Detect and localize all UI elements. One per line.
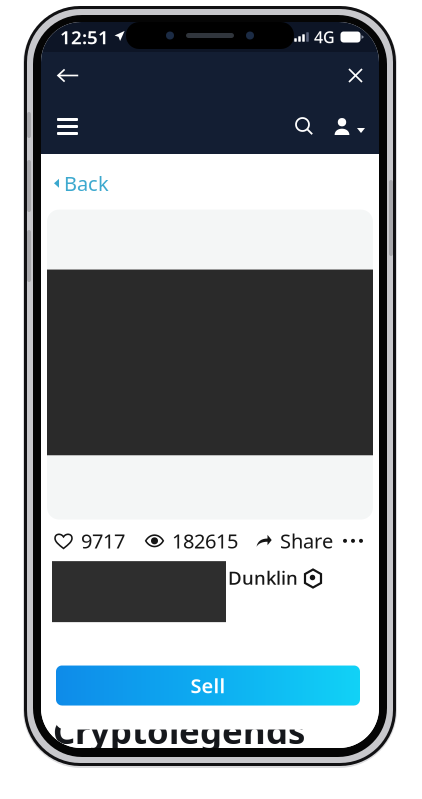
staticText: 4G <box>314 26 335 48</box>
button[interactable]: Close <box>336 52 379 99</box>
button[interactable]: 182615 <box>125 525 238 557</box>
staticText: Sell <box>190 672 225 699</box>
staticText: 182615 <box>172 528 238 554</box>
button[interactable]: Back <box>41 154 109 210</box>
staticText: 9717 <box>81 528 125 554</box>
staticText: Share <box>280 528 333 554</box>
button[interactable]: Menu <box>41 99 90 154</box>
staticText: Created by Nathan Dunklin <box>53 565 298 590</box>
button[interactable]: 9717 <box>54 525 125 557</box>
button[interactable]: Sell <box>56 665 360 705</box>
button[interactable]: Share <box>238 525 333 557</box>
button[interactable]: Back <box>41 52 91 98</box>
button[interactable]: More options <box>339 531 367 551</box>
staticText: Back <box>64 170 109 197</box>
staticText: Cryptolegends <box>53 707 305 753</box>
button[interactable]: Search <box>286 99 323 154</box>
button[interactable]: Account <box>323 99 379 154</box>
staticText: 12:51 <box>60 25 109 49</box>
